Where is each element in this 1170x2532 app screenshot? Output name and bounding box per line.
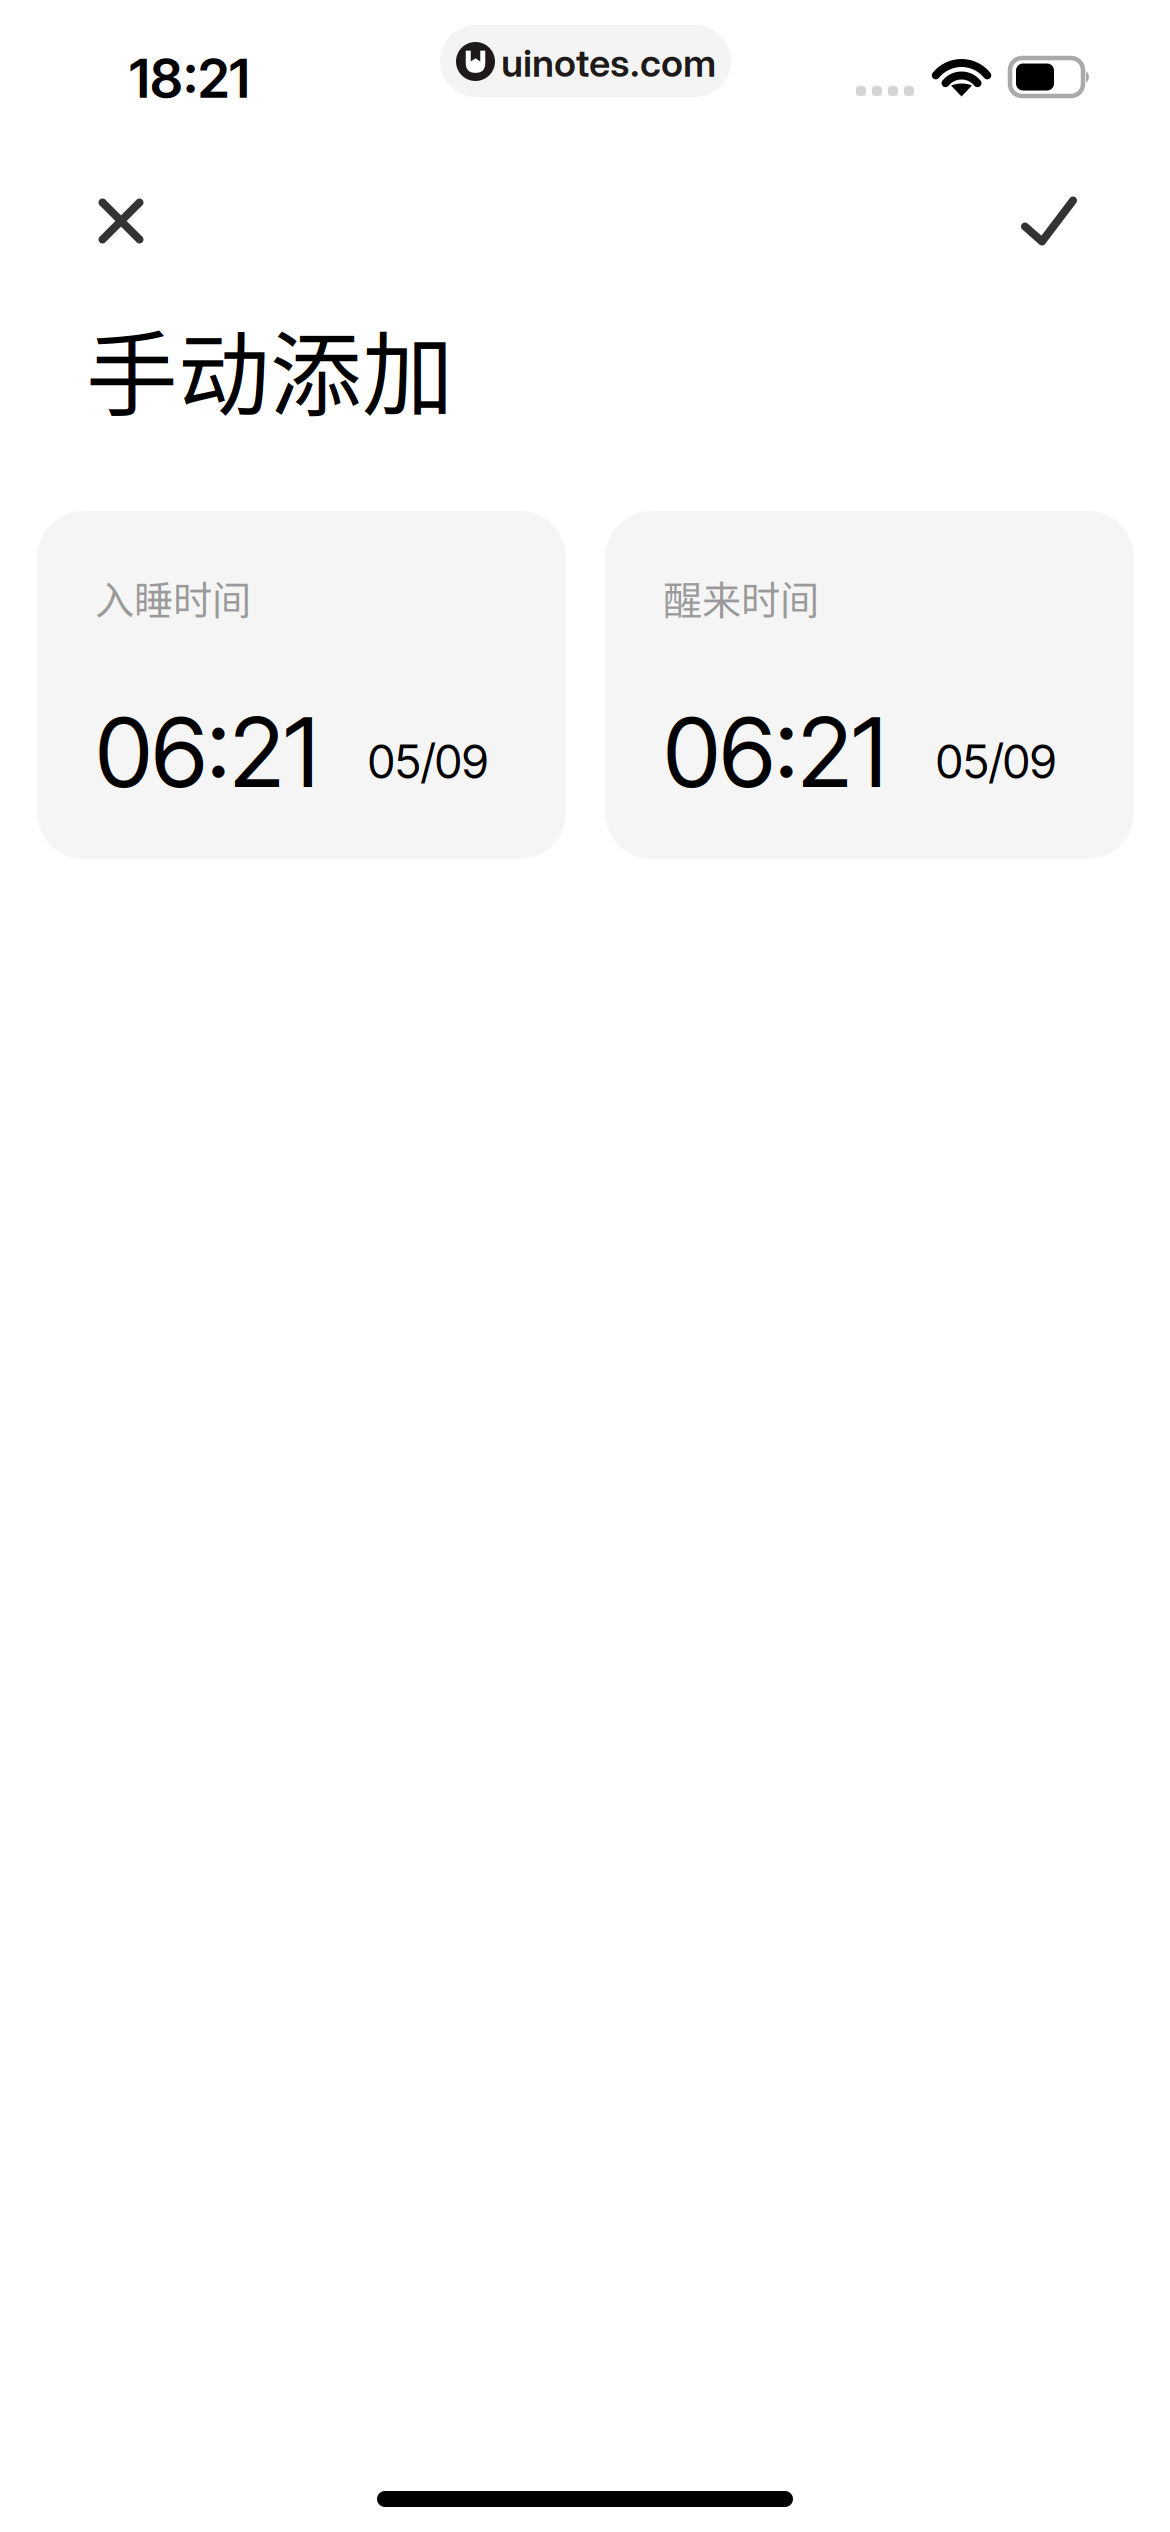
staticText: 手动添加 [86, 302, 454, 434]
button[interactable]: 入睡时间 [37, 511, 566, 859]
button[interactable]: Close [56, 156, 186, 286]
staticText: 06:21 [96, 694, 318, 810]
staticText: 05/09 [368, 734, 488, 790]
staticText: 06:21 [664, 694, 886, 810]
staticText: uinotes.com [501, 40, 716, 86]
button[interactable]: 醒来时间 [605, 511, 1134, 859]
staticText: 05/09 [936, 734, 1056, 790]
button[interactable]: Save [984, 156, 1114, 286]
staticText: 18:21 [129, 46, 250, 111]
staticText: 入睡时间 [95, 569, 251, 626]
staticText: 醒来时间 [663, 569, 819, 626]
